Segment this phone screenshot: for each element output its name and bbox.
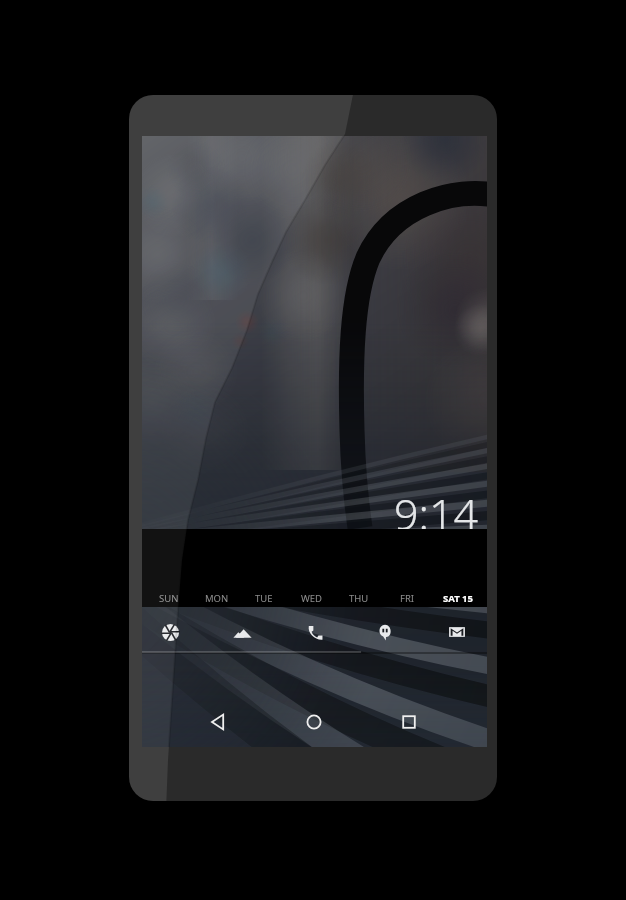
button[interactable]: Back xyxy=(195,699,241,745)
button[interactable]: Camera xyxy=(148,610,192,654)
button[interactable]: WED xyxy=(289,590,335,606)
button[interactable]: MON xyxy=(194,590,240,606)
button[interactable]: TUE xyxy=(241,590,287,606)
staticText: WED xyxy=(301,592,323,605)
button[interactable]: Photos xyxy=(220,611,264,655)
button[interactable]: SUN xyxy=(146,590,192,606)
button[interactable]: THU xyxy=(336,590,382,606)
staticText: THU xyxy=(349,592,369,605)
staticText: TUE xyxy=(255,592,273,605)
button[interactable] xyxy=(142,529,487,607)
staticText: MON xyxy=(205,592,229,605)
staticText: SAT 15 xyxy=(443,592,473,605)
button[interactable]: FRI xyxy=(384,590,430,606)
staticText: 9:14 xyxy=(394,484,479,543)
staticText: SUN xyxy=(159,592,179,605)
staticText: FRI xyxy=(400,592,415,605)
button[interactable]: Hangouts xyxy=(363,610,407,654)
button[interactable]: Home xyxy=(291,699,337,745)
button[interactable]: Gmail xyxy=(435,610,479,654)
button[interactable]: Phone xyxy=(292,610,336,654)
button[interactable]: Recents xyxy=(386,699,432,745)
button[interactable]: SAT 15 xyxy=(435,590,481,606)
